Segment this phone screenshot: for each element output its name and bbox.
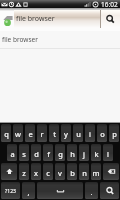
button[interactable]: f [43, 144, 53, 161]
staticText: f [47, 149, 50, 159]
button[interactable]: k [91, 144, 101, 161]
button[interactable]: m [91, 163, 101, 180]
button[interactable]: q [1, 124, 11, 142]
staticText: t [53, 129, 56, 139]
button[interactable]: file browser [0, 31, 120, 48]
staticText: y [64, 129, 68, 139]
button[interactable]: . [85, 182, 98, 199]
button[interactable]: d [31, 144, 41, 161]
button[interactable]: w [13, 124, 23, 142]
staticText: c [46, 168, 50, 178]
button[interactable]: o [97, 124, 107, 142]
staticText: o [100, 129, 105, 139]
staticText: v [58, 168, 62, 178]
staticText: d [34, 149, 39, 159]
button[interactable]: y [61, 124, 71, 142]
button[interactable]: n [79, 163, 89, 180]
button[interactable]: a [7, 144, 17, 161]
staticText: i [89, 129, 91, 139]
staticText: j [83, 149, 85, 159]
staticText: l [107, 149, 109, 159]
staticText: e [28, 129, 33, 139]
button[interactable]: x [31, 163, 41, 180]
button[interactable]: z [19, 163, 29, 180]
staticText: file browser [16, 14, 55, 24]
staticText: x [34, 168, 38, 178]
button[interactable]: s [19, 144, 29, 161]
staticText: , [27, 187, 30, 197]
staticText: g [58, 149, 63, 159]
staticText: n [82, 168, 87, 178]
staticText: 16:02 [101, 0, 118, 8]
staticText: k [94, 149, 99, 159]
staticText: h [70, 149, 75, 159]
staticText: a [10, 149, 15, 159]
staticText: b [70, 168, 75, 178]
button[interactable]: c [43, 163, 53, 180]
staticText: . [90, 187, 93, 197]
button[interactable]: t [49, 124, 59, 142]
button[interactable]: u [73, 124, 83, 142]
button[interactable]: Search [100, 182, 119, 199]
button[interactable]: p [109, 124, 119, 142]
button[interactable]: v [55, 163, 65, 180]
button[interactable]: i [85, 124, 95, 142]
button[interactable]: e [25, 124, 35, 142]
staticText: file browser [2, 35, 38, 44]
staticText: m [92, 168, 100, 178]
staticText: w [15, 129, 21, 139]
staticText: r [40, 129, 44, 139]
staticText: s [22, 149, 26, 159]
staticText: q [4, 129, 9, 139]
button[interactable]: Space [37, 182, 83, 199]
button[interactable]: j [79, 144, 89, 161]
button[interactable]: Delete [103, 163, 119, 180]
staticText: p [112, 129, 117, 139]
button[interactable]: b [67, 163, 77, 180]
button[interactable]: , [22, 182, 35, 199]
button[interactable]: g [55, 144, 65, 161]
button[interactable]: ?123 [1, 182, 20, 199]
button[interactable]: Shift [1, 163, 17, 180]
staticText: z [22, 168, 26, 178]
staticText: u [76, 129, 81, 139]
button[interactable]: Search [101, 10, 120, 28]
button[interactable]: file browser [14, 10, 100, 28]
button[interactable]: l [103, 144, 113, 161]
button[interactable]: Search source [1, 13, 14, 26]
button[interactable]: r [37, 124, 47, 142]
button[interactable]: h [67, 144, 77, 161]
staticText: ?123 [5, 188, 16, 195]
